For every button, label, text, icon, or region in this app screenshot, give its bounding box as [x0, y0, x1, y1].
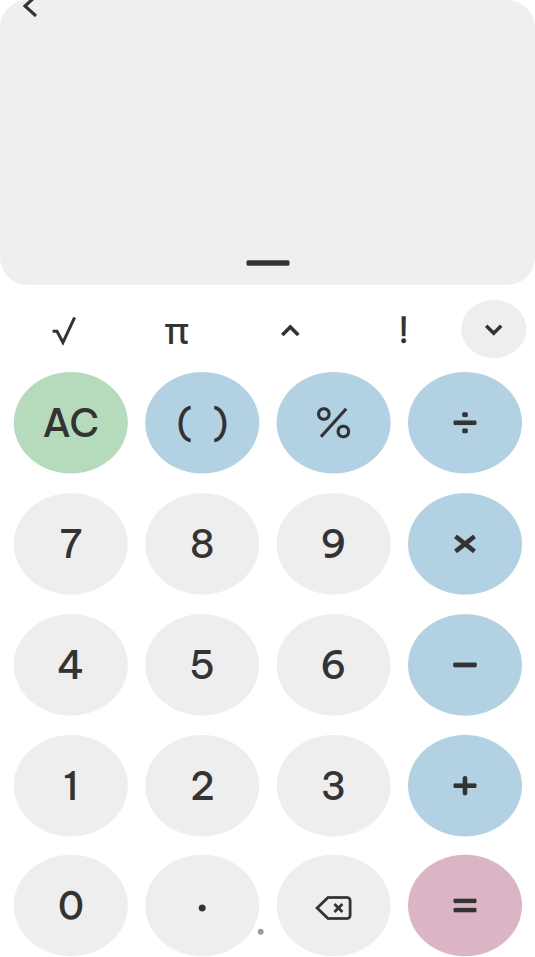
button[interactable]: 7	[14, 493, 128, 595]
button[interactable]: Decimal point	[145, 855, 259, 956]
staticText: 7	[59, 519, 82, 568]
button[interactable]: Parentheses	[145, 372, 259, 473]
button[interactable]: 1	[14, 735, 128, 836]
button[interactable]: Back	[8, 0, 52, 28]
button[interactable]: Multiply	[408, 493, 522, 595]
staticText: 9	[320, 519, 347, 568]
button[interactable]: 3	[277, 735, 391, 836]
staticText: 3	[321, 761, 347, 810]
staticText: 2	[190, 761, 215, 810]
button[interactable]: AC	[14, 372, 128, 473]
staticText: 5	[189, 640, 215, 689]
button[interactable]: More functions	[461, 300, 526, 358]
button[interactable]: Percent	[277, 372, 391, 473]
button[interactable]: 2	[145, 735, 259, 836]
staticText: AC	[42, 398, 99, 447]
button[interactable]: 0	[14, 855, 128, 956]
staticText: 6	[320, 640, 347, 689]
staticText: 8	[190, 519, 215, 568]
staticText: 0	[58, 881, 84, 930]
staticText: π	[165, 305, 189, 354]
button[interactable]: π	[134, 301, 220, 359]
button[interactable]: Plus	[408, 735, 522, 836]
button[interactable]: 9	[277, 493, 391, 595]
staticText: 1	[63, 761, 78, 810]
staticText: 4	[57, 640, 85, 689]
button[interactable]: Divide	[408, 372, 522, 473]
staticText: )	[213, 400, 228, 444]
button[interactable]: 4	[14, 614, 128, 716]
button[interactable]: Equals	[408, 855, 522, 956]
button[interactable]: Square root	[21, 301, 107, 359]
staticText: !	[398, 307, 409, 353]
staticText: (	[177, 400, 192, 444]
button[interactable]: Delete	[277, 855, 391, 956]
button[interactable]: 6	[277, 614, 391, 716]
button[interactable]: Exponent	[247, 302, 333, 360]
button[interactable]: 5	[145, 614, 259, 716]
button[interactable]: Minus	[408, 614, 522, 716]
button[interactable]: 8	[145, 493, 259, 595]
button[interactable]: !	[361, 301, 447, 359]
